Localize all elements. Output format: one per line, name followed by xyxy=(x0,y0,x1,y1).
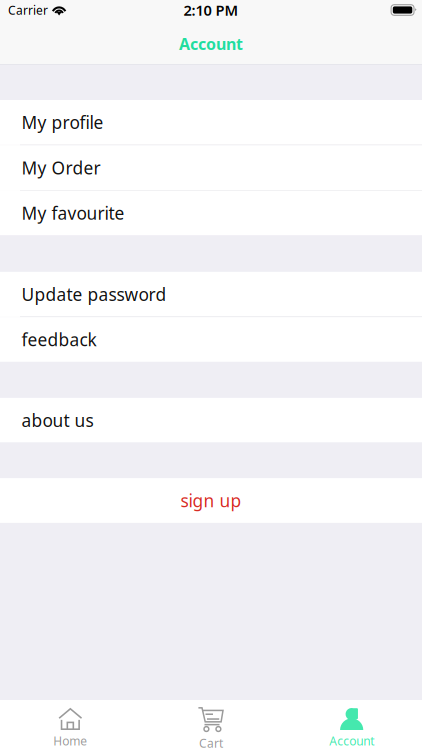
staticText: Home xyxy=(53,733,87,749)
staticText: My Order xyxy=(21,156,100,179)
staticText: My profile xyxy=(21,111,103,134)
button[interactable]: Update password xyxy=(0,272,422,317)
staticText: Carrier xyxy=(8,2,48,18)
staticText: 2:10 PM xyxy=(183,0,238,20)
button[interactable]: Home xyxy=(0,700,141,750)
button[interactable]: My Order xyxy=(0,145,422,190)
staticText: Cart xyxy=(199,735,223,750)
staticText: feedback xyxy=(21,328,96,351)
staticText: about us xyxy=(21,409,93,432)
staticText: Account xyxy=(179,33,243,54)
staticText: My favourite xyxy=(21,201,124,224)
button[interactable]: sign up xyxy=(0,478,422,523)
button[interactable]: My favourite xyxy=(0,191,422,235)
button[interactable]: Account xyxy=(281,700,422,750)
staticText: Update password xyxy=(21,283,166,306)
button[interactable]: about us xyxy=(0,398,422,443)
button[interactable]: feedback xyxy=(0,317,422,362)
staticText: sign up xyxy=(180,489,241,512)
staticText: Account xyxy=(329,733,374,749)
button[interactable]: Cart xyxy=(141,700,281,750)
button[interactable]: My profile xyxy=(0,100,422,145)
